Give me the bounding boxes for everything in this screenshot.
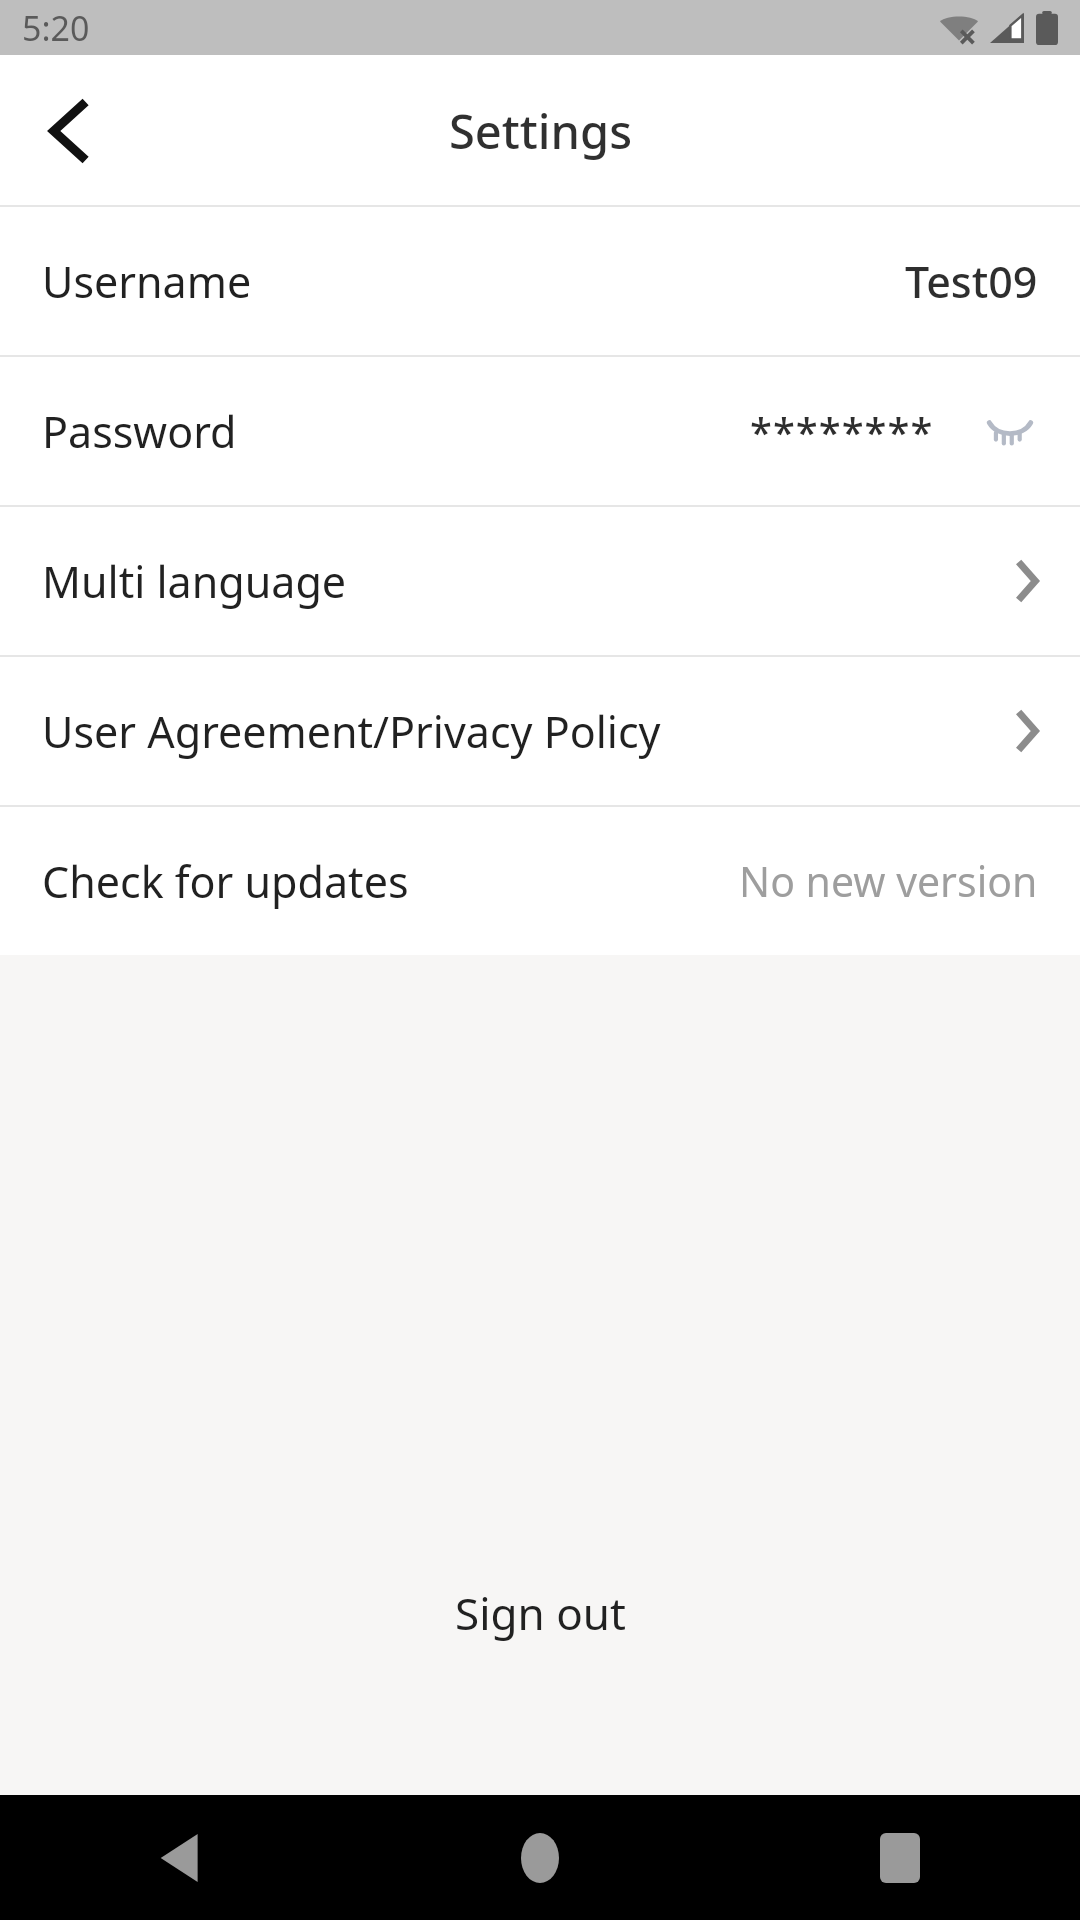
button[interactable]: Show password	[982, 403, 1038, 459]
staticText: Username	[42, 252, 252, 311]
button[interactable]: Password	[0, 357, 1080, 505]
staticText: Multi language	[42, 552, 347, 611]
staticText: Sign out	[455, 1583, 626, 1643]
button[interactable]: Username	[0, 207, 1080, 355]
button[interactable]: Back	[0, 1795, 360, 1920]
staticText: Check for updates	[42, 852, 409, 911]
staticText: ********	[750, 404, 934, 458]
button[interactable]: Back	[20, 83, 116, 179]
button[interactable]: User Agreement/Privacy Policy	[0, 657, 1080, 805]
staticText: Settings	[449, 99, 632, 163]
staticText: No new version	[739, 853, 1038, 909]
staticText: Password	[42, 402, 237, 461]
button[interactable]: Sign out	[415, 1569, 666, 1657]
button[interactable]: Multi language	[0, 507, 1080, 655]
staticText: Test09	[905, 252, 1038, 311]
button[interactable]: Check for updates	[0, 807, 1080, 955]
button[interactable]: Recent apps	[720, 1795, 1080, 1920]
staticText: 5:20	[22, 5, 90, 51]
staticText: User Agreement/Privacy Policy	[42, 702, 661, 761]
button[interactable]: Home	[360, 1795, 720, 1920]
